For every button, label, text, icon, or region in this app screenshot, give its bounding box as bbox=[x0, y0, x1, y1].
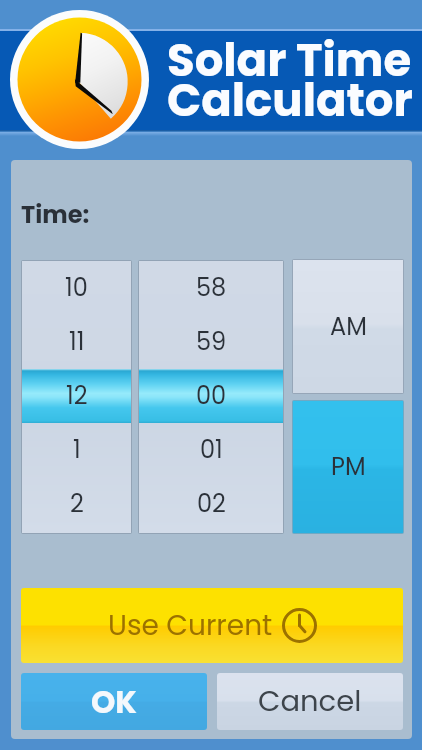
staticText: 2 bbox=[70, 487, 84, 521]
button[interactable]: 12 bbox=[22, 369, 131, 423]
button[interactable]: PM bbox=[293, 401, 403, 533]
staticText: 11 bbox=[69, 325, 85, 359]
staticText: 58 bbox=[196, 271, 227, 305]
button[interactable]: OK bbox=[21, 673, 207, 730]
button[interactable]: AM bbox=[293, 260, 403, 393]
button[interactable]: 02 bbox=[139, 477, 283, 531]
button[interactable]: 2 bbox=[22, 477, 131, 531]
button[interactable]: 10 bbox=[22, 261, 131, 315]
button[interactable]: 00 bbox=[139, 369, 283, 423]
button[interactable]: 58 bbox=[139, 261, 283, 315]
button[interactable]: 1 bbox=[22, 423, 131, 477]
staticText: Cancel bbox=[258, 681, 362, 722]
button[interactable]: Cancel bbox=[217, 673, 403, 730]
button[interactable]: Use Current bbox=[21, 588, 403, 663]
staticText: Solar Time Calculator bbox=[167, 29, 413, 132]
staticText: Time: bbox=[21, 198, 90, 232]
staticText: AM bbox=[330, 310, 367, 344]
button[interactable]: 59 bbox=[139, 315, 283, 369]
staticText: 10 bbox=[65, 271, 88, 305]
staticText: OK bbox=[91, 680, 137, 723]
other: Solar Time Calculator logo bbox=[10, 10, 149, 149]
staticText: 00 bbox=[196, 379, 227, 413]
button[interactable]: 01 bbox=[139, 423, 283, 477]
staticText: 01 bbox=[200, 433, 223, 467]
staticText: 59 bbox=[196, 325, 227, 359]
staticText: 02 bbox=[197, 487, 226, 521]
staticText: Use Current bbox=[108, 606, 273, 645]
staticText: 1 bbox=[73, 433, 81, 467]
button[interactable]: 11 bbox=[22, 315, 131, 369]
other: Use current time bbox=[282, 608, 317, 643]
staticText: 12 bbox=[66, 379, 88, 413]
staticText: PM bbox=[331, 450, 366, 484]
